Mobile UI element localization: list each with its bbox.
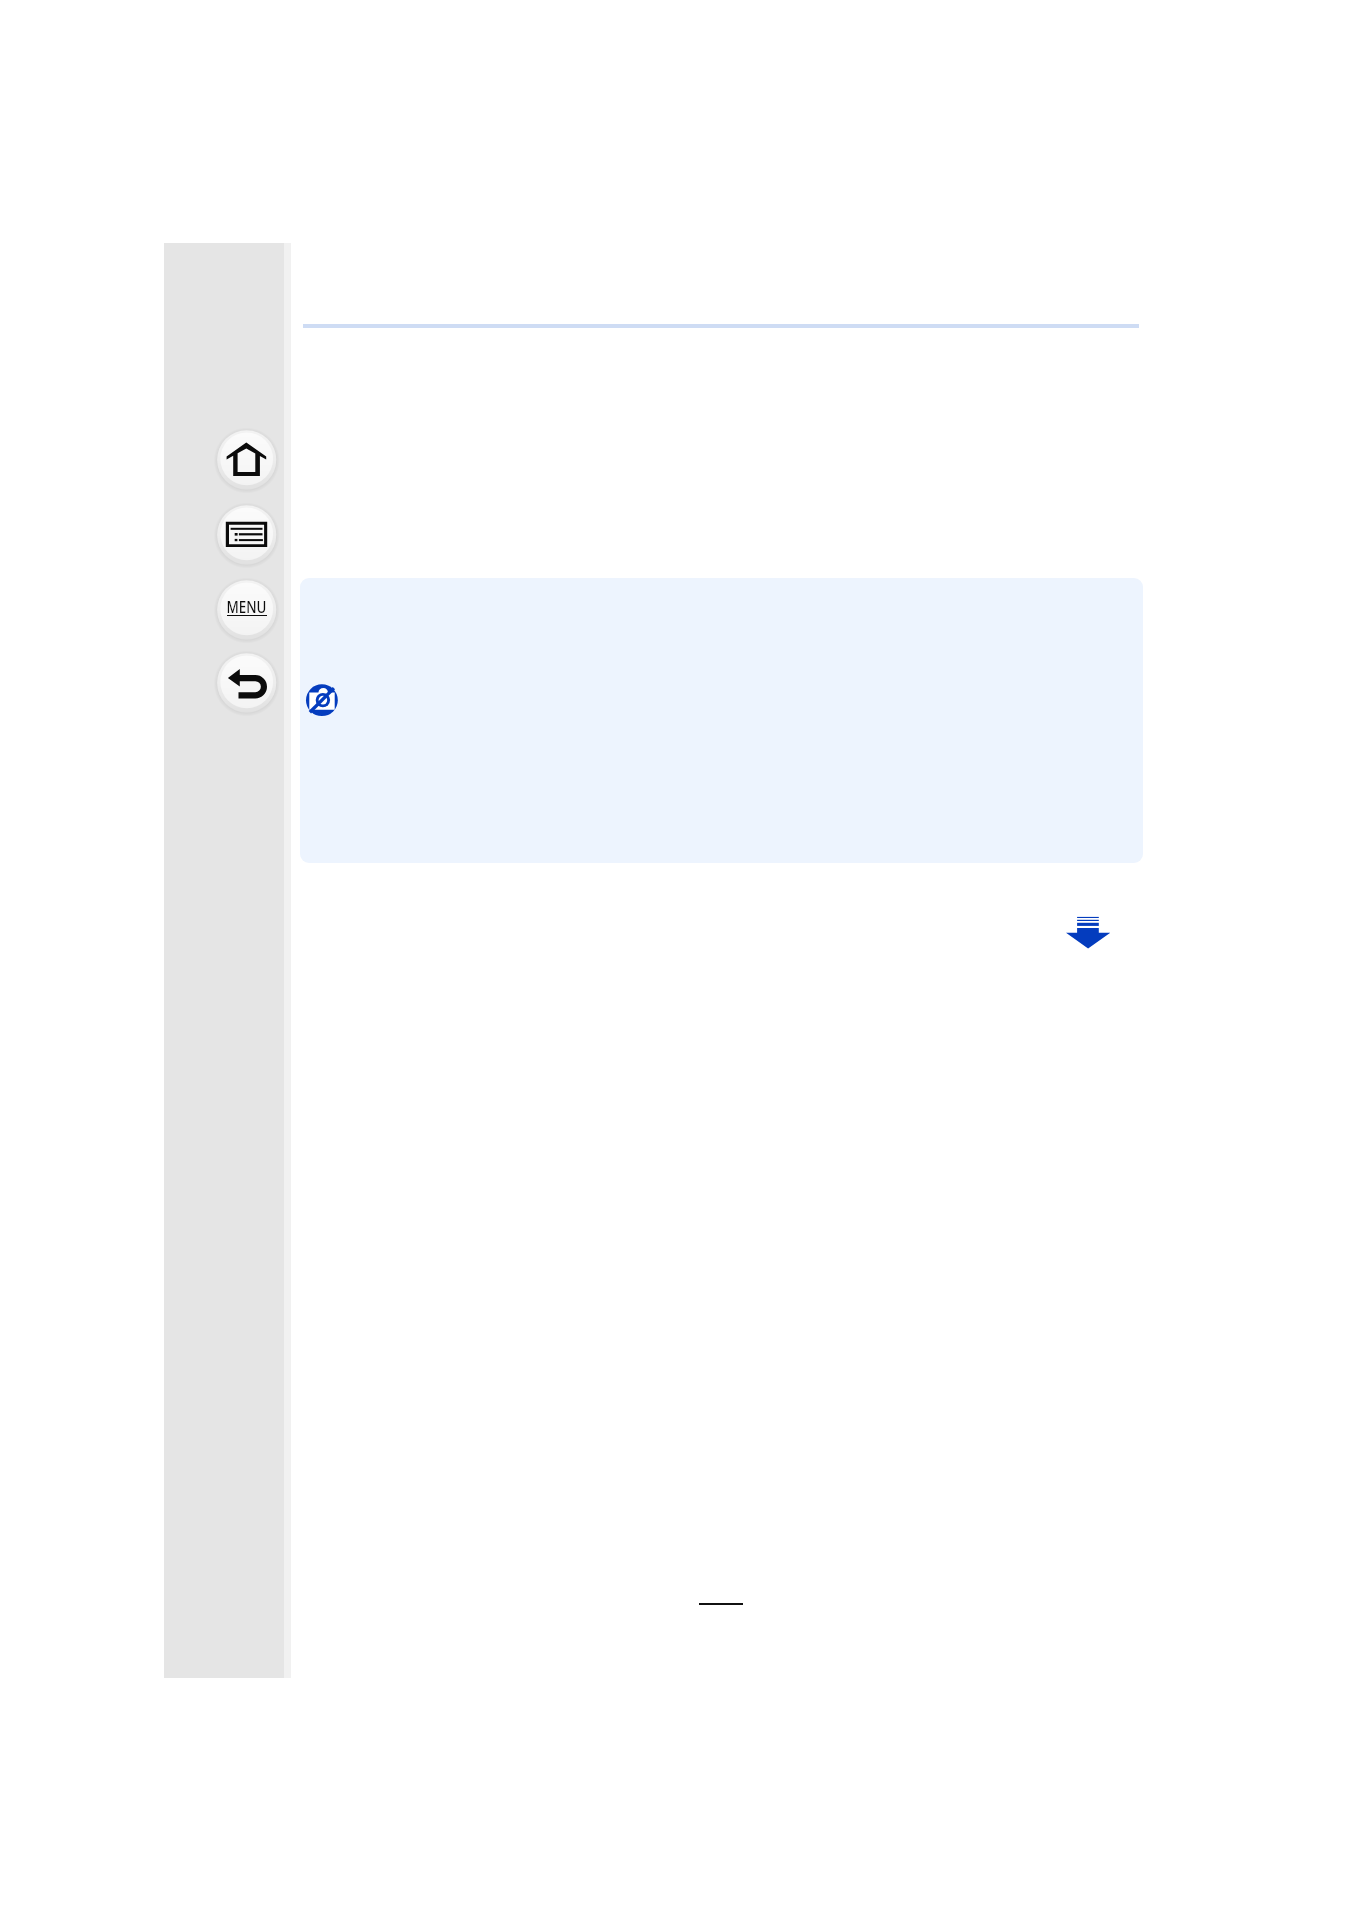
staticText: MENU	[226, 595, 266, 617]
button[interactable]: Not available in recording mode	[305, 683, 340, 718]
button[interactable]: MENU	[210, 572, 282, 644]
button[interactable]: Home	[210, 422, 282, 494]
button[interactable]: Back	[210, 645, 282, 717]
button[interactable]: Continued on next page	[1064, 913, 1112, 952]
button[interactable]: Table of contents	[210, 497, 282, 569]
